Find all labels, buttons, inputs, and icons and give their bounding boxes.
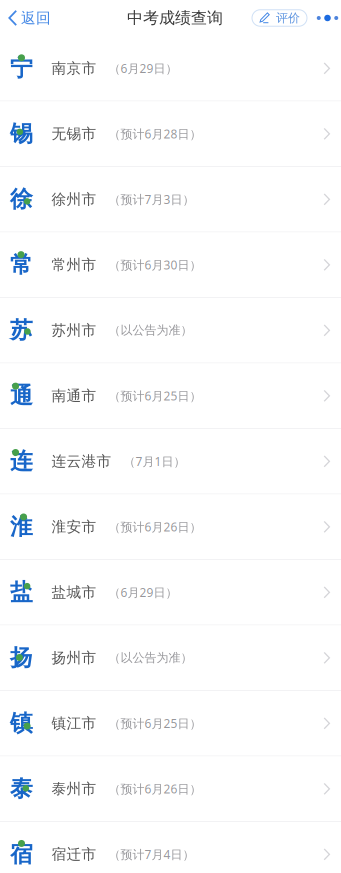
button[interactable]: 连 (0, 429, 341, 494)
staticText: （6月29日） (108, 60, 177, 76)
button[interactable]: 扬 (0, 625, 341, 691)
staticText: （预计6月28日） (108, 126, 201, 142)
staticText: 盐城市 (51, 583, 96, 601)
staticText: 徐 (10, 185, 33, 213)
button[interactable]: 评价 (252, 10, 307, 26)
staticText: （预计6月30日） (108, 257, 201, 273)
button[interactable]: 徐 (0, 167, 341, 232)
staticText: （预计7月3日） (108, 191, 194, 207)
staticText: （预计6月26日） (108, 781, 201, 797)
staticText: 苏州市 (51, 321, 96, 339)
staticText: 返回 (21, 9, 51, 27)
staticText: （预计6月25日） (108, 388, 201, 404)
button[interactable]: 泰 (0, 756, 341, 822)
staticText: 锡 (10, 120, 33, 148)
staticText: 宁 (10, 54, 33, 82)
staticText: 盐 (10, 578, 33, 606)
button[interactable]: 苏 (0, 298, 341, 363)
button[interactable]: More options (316, 1, 339, 35)
staticText: 无锡市 (51, 125, 96, 143)
staticText: 徐州市 (51, 190, 96, 208)
staticText: 镇江市 (51, 714, 96, 732)
staticText: （预计7月4日） (108, 846, 194, 862)
staticText: （以公告为准） (108, 323, 192, 338)
button[interactable]: 常 (0, 232, 341, 298)
staticText: （预计6月26日） (108, 519, 201, 535)
staticText: 扬州市 (51, 649, 96, 667)
staticText: （以公告为准） (108, 650, 192, 665)
staticText: 南通市 (51, 387, 96, 405)
staticText: 淮 (10, 513, 33, 541)
staticText: 评价 (276, 11, 300, 25)
staticText: 南京市 (51, 59, 96, 77)
staticText: 苏 (10, 316, 33, 344)
staticText: 泰州市 (51, 780, 96, 798)
staticText: 淮安市 (51, 518, 96, 536)
staticText: 通 (10, 382, 33, 410)
staticText: 扬 (10, 644, 33, 672)
staticText: 宿迁市 (51, 845, 96, 863)
button[interactable]: 淮 (0, 494, 341, 560)
staticText: 常州市 (51, 256, 96, 274)
staticText: 常 (10, 251, 33, 279)
staticText: 镇 (10, 709, 33, 737)
staticText: （6月29日） (108, 584, 177, 600)
button[interactable]: 盐 (0, 560, 341, 625)
button[interactable]: 返回 (0, 1, 57, 35)
staticText: 宿 (10, 840, 33, 868)
staticText: 连 (10, 447, 33, 475)
staticText: 连云港市 (51, 452, 111, 470)
staticText: （预计6月25日） (108, 715, 201, 731)
staticText: （7月1日） (123, 453, 185, 469)
button[interactable]: 锡 (0, 101, 341, 167)
button[interactable]: 宁 (0, 36, 341, 101)
button[interactable]: 镇 (0, 691, 341, 756)
staticText: 中考成绩查询 (127, 8, 223, 28)
button[interactable]: 宿 (0, 822, 341, 873)
staticText: 泰 (10, 775, 33, 803)
button[interactable]: 通 (0, 363, 341, 429)
